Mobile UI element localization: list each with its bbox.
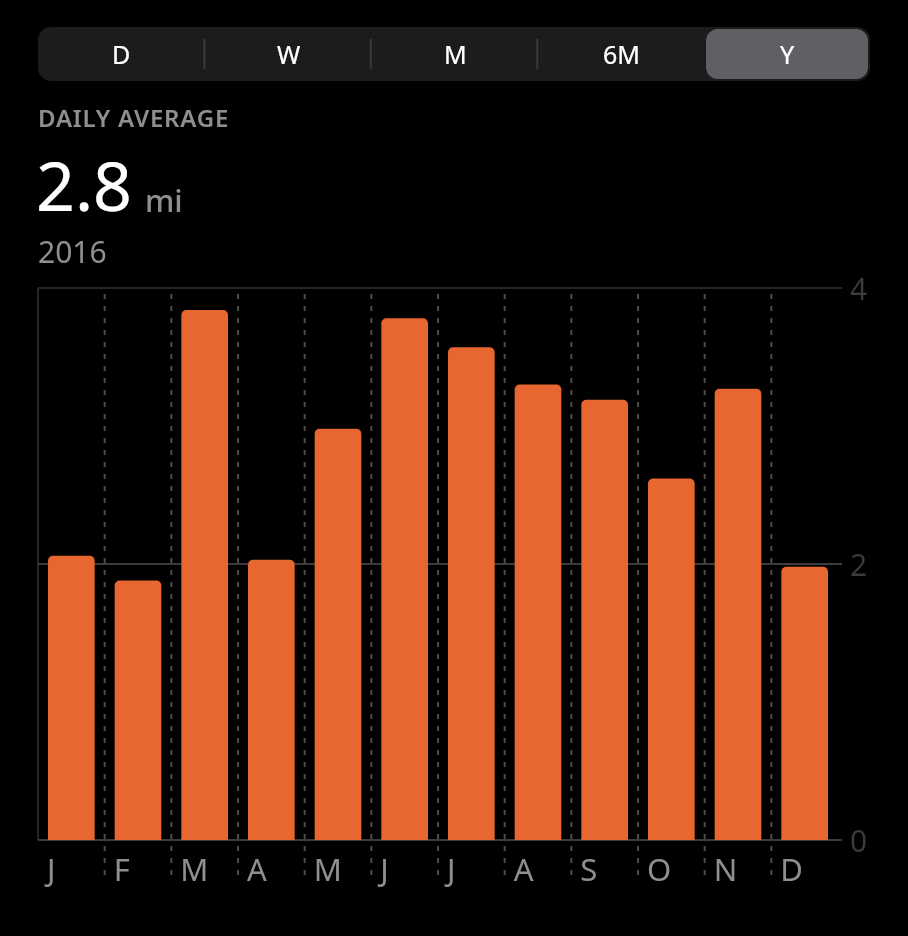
staticText: W xyxy=(277,37,301,71)
staticText: DAILY AVERAGE xyxy=(38,101,230,134)
staticText: 6M xyxy=(603,37,640,71)
staticText: 2016 xyxy=(38,231,107,272)
staticText: D xyxy=(112,37,131,71)
staticText: 2.8 xyxy=(36,138,133,231)
staticText: M xyxy=(444,37,467,71)
button[interactable]: Y xyxy=(706,29,868,79)
button[interactable]: M xyxy=(374,29,536,79)
button[interactable]: W xyxy=(207,29,370,79)
button[interactable]: 6M xyxy=(540,29,702,79)
staticText: Y xyxy=(780,37,795,71)
staticText: mi xyxy=(145,179,183,221)
button[interactable]: D xyxy=(40,29,203,79)
